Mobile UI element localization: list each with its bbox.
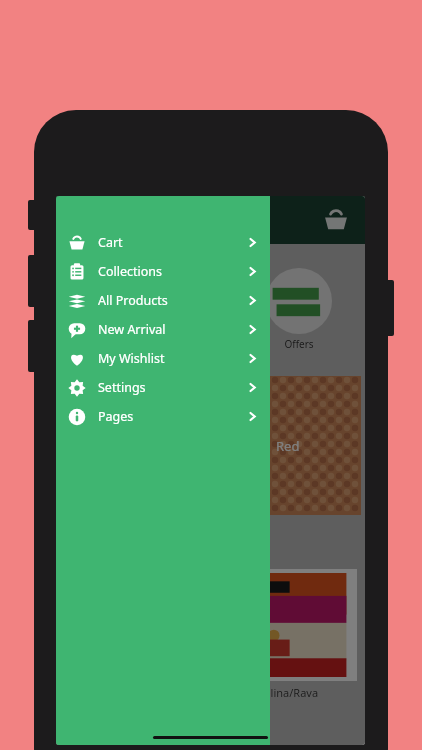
staticText: Red xyxy=(276,437,300,455)
staticText: Fine Semolina/Rava xyxy=(217,685,319,700)
button[interactable]: Best Deals xyxy=(56,262,142,351)
staticText: Settings xyxy=(98,379,146,396)
staticText: Shop by Choice xyxy=(62,244,134,258)
button[interactable]: Newly Arrived xyxy=(156,262,242,351)
button[interactable]: Cart xyxy=(56,228,270,257)
button[interactable]: My Wishlist xyxy=(56,344,270,373)
staticText: Collections xyxy=(98,263,162,280)
staticText: New Arrival xyxy=(98,321,166,338)
staticText: All Products xyxy=(98,292,168,309)
staticText: My Wishlist xyxy=(98,350,165,367)
button[interactable]: Fine Semolina/Rava xyxy=(215,567,359,718)
button[interactable]: Red xyxy=(215,376,361,515)
button[interactable] xyxy=(60,364,205,527)
button[interactable]: Pages xyxy=(56,402,270,431)
staticText: Cart xyxy=(98,234,123,251)
button[interactable]: Cart xyxy=(323,207,349,233)
button[interactable]: Settings xyxy=(56,373,270,402)
button[interactable]: Offers xyxy=(256,262,342,351)
button[interactable]: All Products xyxy=(56,286,270,315)
button[interactable]: New Arrival xyxy=(56,315,270,344)
staticText: Pages xyxy=(98,408,134,425)
staticText: Offers xyxy=(284,337,314,351)
button[interactable]: Collections xyxy=(56,257,270,286)
